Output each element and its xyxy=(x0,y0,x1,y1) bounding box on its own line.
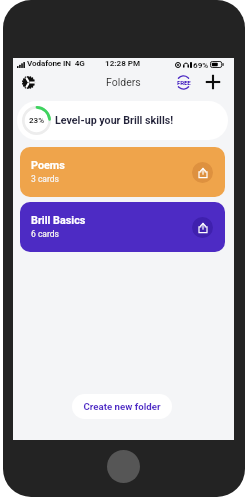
staticText: Vodafone IN 4G xyxy=(27,58,85,67)
staticText: FREE xyxy=(177,79,191,86)
button[interactable]: 23% xyxy=(17,101,228,140)
staticText: 12:28 PM xyxy=(105,58,141,67)
staticText: Create new folder xyxy=(83,401,161,412)
button[interactable]: Poems xyxy=(20,147,225,197)
staticText: 69% xyxy=(193,60,209,69)
button[interactable]: Share xyxy=(192,217,213,238)
staticText: Brill Basics xyxy=(31,214,86,227)
button[interactable]: Brill Basics xyxy=(20,202,225,252)
button[interactable]: Share xyxy=(192,162,213,183)
staticText: 23% xyxy=(29,116,45,125)
button[interactable]: Add folder xyxy=(202,72,223,92)
staticText: Level-up your Brill skills! xyxy=(55,114,174,127)
staticText: Poems xyxy=(31,159,65,172)
button[interactable]: Free badge xyxy=(173,72,194,92)
staticText: 6 cards xyxy=(31,229,59,239)
staticText: 3 cards xyxy=(31,174,59,184)
button[interactable]: Create new folder xyxy=(72,394,172,419)
button[interactable]: App logo xyxy=(18,72,39,92)
staticText: Folders xyxy=(106,76,141,88)
